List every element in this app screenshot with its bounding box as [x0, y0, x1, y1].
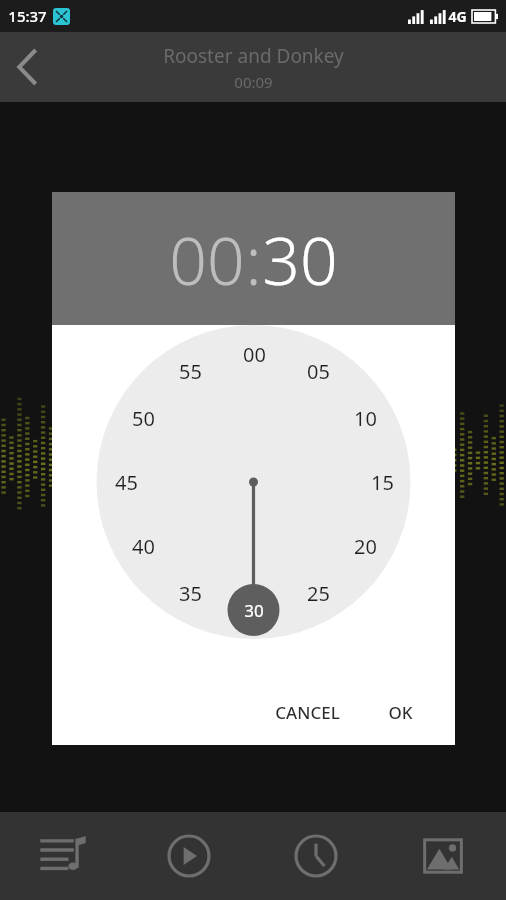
button[interactable]: 15 — [369, 469, 395, 495]
staticText: OK — [388, 701, 413, 724]
staticText: 15 — [371, 469, 394, 495]
staticText: Rooster and Donkey — [163, 43, 344, 69]
button[interactable]: 10 — [352, 405, 378, 431]
staticText: 05 — [307, 358, 330, 384]
button[interactable]: CANCEL — [261, 693, 354, 732]
button[interactable]: Timer — [252, 812, 379, 900]
button[interactable]: 50 — [130, 405, 156, 431]
staticText: 4G — [448, 7, 467, 26]
button[interactable]: 55 — [177, 358, 203, 384]
staticText: 25 — [307, 580, 330, 606]
staticText: 35 — [179, 580, 202, 606]
button[interactable]: 45 — [113, 469, 139, 495]
button[interactable]: 25 — [305, 580, 331, 606]
staticText: 10 — [354, 405, 377, 431]
staticText: 45 — [115, 469, 138, 495]
button[interactable]: Gallery — [379, 812, 506, 900]
staticText: CANCEL — [275, 701, 340, 724]
button[interactable]: 00 — [169, 214, 245, 304]
staticText: 50 — [132, 405, 155, 431]
button[interactable]: 00 — [241, 341, 267, 367]
staticText: : — [245, 214, 262, 304]
button[interactable]: 30 — [262, 214, 338, 304]
staticText: 40 — [132, 533, 155, 559]
button[interactable]: Back — [0, 39, 56, 95]
button[interactable]: OK — [374, 693, 427, 732]
button[interactable]: 30 — [241, 597, 267, 623]
button[interactable]: Playlist — [0, 812, 126, 900]
button[interactable]: 40 — [130, 533, 156, 559]
staticText: 00:09 — [234, 72, 273, 92]
button[interactable]: 20 — [352, 533, 378, 559]
staticText: 55 — [179, 358, 202, 384]
staticText: 15:37 — [8, 6, 47, 26]
button[interactable]: Play — [126, 812, 252, 900]
button[interactable]: 35 — [177, 580, 203, 606]
staticText: 00 — [243, 341, 266, 367]
button[interactable]: 05 — [305, 358, 331, 384]
staticText: 20 — [354, 533, 377, 559]
staticText: 30 — [244, 599, 264, 622]
